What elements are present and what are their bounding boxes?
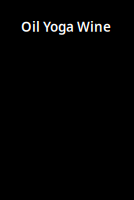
staticText: Oil Yoga Wine (21, 17, 111, 36)
